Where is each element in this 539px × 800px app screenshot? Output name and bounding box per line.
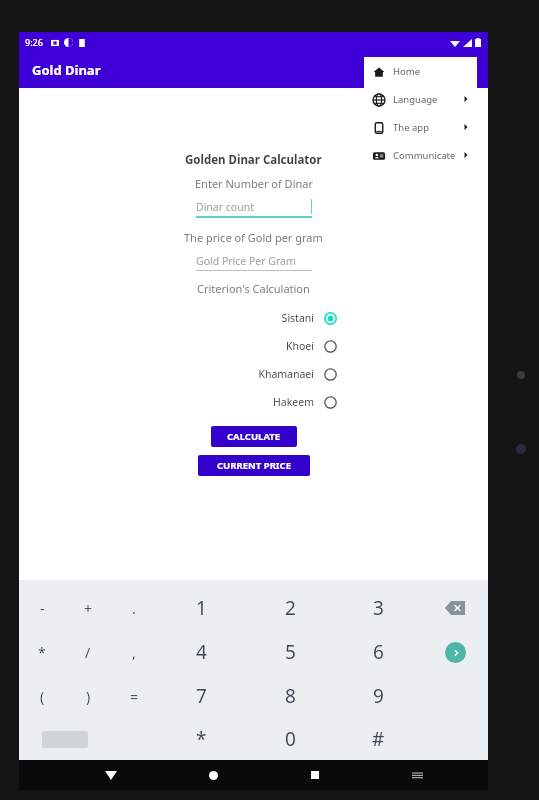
button[interactable]: Enter xyxy=(445,642,466,663)
button[interactable]: Recents xyxy=(264,760,366,790)
button[interactable]: CALCULATE xyxy=(211,426,297,447)
button[interactable]: 8 xyxy=(246,674,334,718)
staticText: Dinar count xyxy=(196,200,254,214)
button[interactable]: Language xyxy=(364,85,477,113)
button[interactable]: 4 xyxy=(157,630,246,674)
staticText: 2 xyxy=(285,595,296,621)
staticText: The app xyxy=(393,121,463,134)
button[interactable]: * xyxy=(19,630,65,674)
button[interactable]: Sistani xyxy=(149,304,359,332)
button[interactable]: 1 xyxy=(157,586,246,630)
button[interactable]: 5 xyxy=(246,630,334,674)
button[interactable]: The app xyxy=(364,113,477,141)
staticText: 9 xyxy=(373,683,384,709)
staticText: * xyxy=(196,726,207,752)
button[interactable]: + xyxy=(65,586,111,630)
button[interactable]: Hakeem xyxy=(149,388,359,416)
button[interactable]: Back xyxy=(59,760,162,790)
button[interactable]: Backspace xyxy=(445,601,465,615)
staticText: + xyxy=(84,599,93,618)
staticText: Communicate xyxy=(393,149,463,162)
staticText: * xyxy=(38,643,46,662)
staticText: Khoei xyxy=(149,339,314,353)
button[interactable] xyxy=(19,718,65,760)
button[interactable]: CURRENT PRICE xyxy=(198,455,310,476)
button[interactable]: Communicate xyxy=(364,141,477,169)
staticText: ( xyxy=(40,687,45,706)
button[interactable]: # xyxy=(334,718,422,760)
staticText: Gold Dinar xyxy=(32,61,101,79)
staticText: . xyxy=(132,599,136,618)
button[interactable]: ) xyxy=(65,674,111,718)
button[interactable]: . xyxy=(111,586,157,630)
button[interactable]: 6 xyxy=(334,630,422,674)
staticText: Criterion's Calculation xyxy=(197,281,310,296)
button[interactable]: 7 xyxy=(157,674,246,718)
button[interactable]: = xyxy=(111,674,157,718)
staticText: CALCULATE xyxy=(227,430,281,443)
button[interactable]: * xyxy=(157,718,246,760)
button[interactable]: ( xyxy=(19,674,65,718)
staticText: 8 xyxy=(285,683,296,709)
staticText: Home xyxy=(393,65,469,78)
staticText: Khamanaei xyxy=(149,367,314,381)
staticText: # xyxy=(372,726,385,752)
staticText: 1 xyxy=(196,595,207,621)
button[interactable]: / xyxy=(65,630,111,674)
button[interactable]: , xyxy=(111,630,157,674)
button[interactable]: Khamanaei xyxy=(149,360,359,388)
staticText: 0 xyxy=(285,726,296,752)
staticText: - xyxy=(40,599,45,618)
button[interactable] xyxy=(65,718,111,760)
staticText: The price of Gold per gram xyxy=(184,230,323,245)
button[interactable]: 0 xyxy=(246,718,334,760)
button[interactable]: Home xyxy=(364,57,477,85)
staticText: 6 xyxy=(373,639,384,665)
button[interactable]: Home xyxy=(162,760,264,790)
staticText: = xyxy=(130,687,139,706)
button[interactable]: Khoei xyxy=(149,332,359,360)
staticText: Hakeem xyxy=(149,395,314,409)
staticText: Language xyxy=(393,93,463,106)
staticText: , xyxy=(132,643,136,662)
button[interactable]: - xyxy=(19,586,65,630)
button[interactable]: 2 xyxy=(246,586,334,630)
button[interactable]: Dinar count xyxy=(196,197,312,218)
staticText: CURRENT PRICE xyxy=(217,459,291,472)
staticText: Sistani xyxy=(149,311,314,325)
staticText: Gold Price Per Gram xyxy=(196,254,296,268)
button[interactable]: Keyboard layout xyxy=(366,760,468,790)
button[interactable]: 3 xyxy=(334,586,422,630)
staticText: ) xyxy=(86,687,91,706)
staticText: 9:26 xyxy=(25,36,43,48)
button[interactable]: Gold Price Per Gram xyxy=(196,251,312,271)
staticText: Enter Number of Dinar xyxy=(195,176,313,191)
staticText: / xyxy=(85,643,91,662)
staticText: 4 xyxy=(196,639,207,665)
staticText: 5 xyxy=(285,639,296,665)
staticText: Golden Dinar Calculator xyxy=(185,152,322,168)
staticText: 3 xyxy=(373,595,384,621)
button[interactable]: 9 xyxy=(334,674,422,718)
staticText: 7 xyxy=(196,683,207,709)
